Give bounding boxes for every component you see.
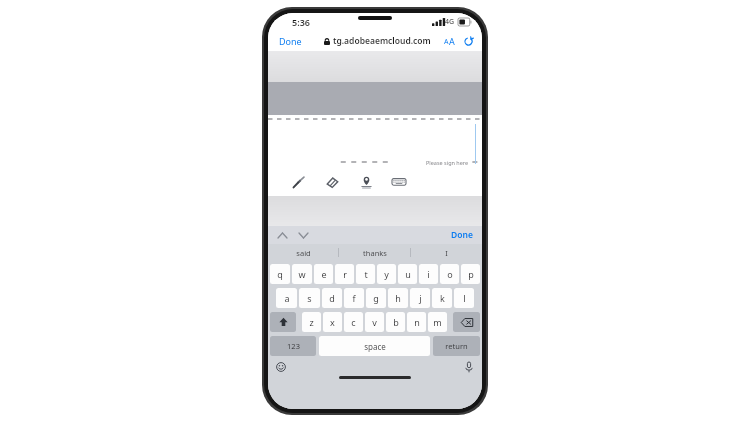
button[interactable]: Done — [276, 33, 305, 49]
staticText: space — [364, 341, 386, 352]
button[interactable]: o — [440, 264, 459, 284]
staticText: k — [440, 292, 445, 304]
button[interactable]: h — [388, 288, 408, 308]
staticText: thanks — [363, 248, 387, 258]
button[interactable]: m — [428, 312, 447, 332]
button[interactable]: Signature stamp — [358, 174, 374, 190]
staticText: p — [468, 268, 474, 280]
staticText: q — [277, 268, 283, 280]
button[interactable]: p — [461, 264, 480, 284]
staticText: u — [405, 268, 411, 280]
button[interactable]: z — [302, 312, 321, 332]
button[interactable]: space — [319, 336, 430, 356]
button[interactable]: n — [407, 312, 426, 332]
staticText: tg.adobeaemcloud.com — [333, 35, 431, 47]
staticText: Please sign here — [426, 159, 469, 166]
button[interactable]: c — [344, 312, 363, 332]
staticText: i — [427, 268, 430, 280]
button[interactable]: g — [366, 288, 386, 308]
staticText: r — [343, 268, 347, 280]
button[interactable]: l — [454, 288, 474, 308]
staticText: y — [384, 268, 389, 280]
button[interactable]: f — [344, 288, 364, 308]
button[interactable]: a — [276, 288, 297, 308]
button[interactable]: Text size — [442, 33, 457, 49]
staticText: x — [330, 316, 335, 328]
staticText: n — [414, 316, 420, 328]
staticText: return — [445, 341, 468, 351]
staticText: Done — [279, 35, 302, 47]
staticText: c — [351, 316, 356, 328]
button[interactable]: Pen — [290, 174, 306, 190]
staticText: A — [449, 35, 455, 47]
staticText: 5:36 — [292, 16, 310, 28]
button[interactable]: b — [386, 312, 405, 332]
staticText: g — [373, 292, 379, 304]
staticText: a — [284, 292, 290, 304]
button[interactable]: j — [410, 288, 430, 308]
button[interactable]: i — [419, 264, 438, 284]
staticText: j — [419, 292, 422, 304]
staticText: f — [352, 292, 356, 304]
staticText: e — [321, 268, 327, 280]
staticText: Done — [451, 229, 473, 241]
staticText: 123 — [287, 341, 300, 351]
button[interactable]: u — [398, 264, 417, 284]
button[interactable]: 123 — [270, 336, 316, 356]
staticText: w — [298, 268, 306, 280]
staticText: A — [444, 37, 449, 47]
button[interactable]: v — [365, 312, 384, 332]
staticText: h — [395, 292, 401, 304]
staticText: said — [296, 248, 311, 258]
staticText: v — [372, 316, 377, 328]
staticText: o — [447, 268, 453, 280]
staticText: l — [463, 292, 466, 304]
button[interactable]: Emoji — [274, 360, 288, 374]
button[interactable]: q — [270, 264, 290, 284]
button[interactable]: Done — [448, 227, 476, 243]
button[interactable]: thanks — [339, 244, 410, 261]
button[interactable]: s — [299, 288, 320, 308]
button[interactable]: t — [356, 264, 375, 284]
button[interactable]: r — [335, 264, 354, 284]
button[interactable]: e — [314, 264, 333, 284]
staticText: t — [364, 268, 368, 280]
button[interactable]: I — [411, 244, 482, 261]
button[interactable]: Reload — [462, 35, 475, 48]
staticText: z — [309, 316, 314, 328]
button[interactable]: y — [377, 264, 396, 284]
button[interactable]: k — [432, 288, 452, 308]
button[interactable]: said — [268, 244, 338, 261]
button[interactable]: Previous field — [275, 228, 289, 242]
staticText: b — [393, 316, 399, 328]
staticText: s — [307, 292, 312, 304]
staticText: 4G — [445, 17, 455, 27]
button[interactable]: x — [323, 312, 342, 332]
button[interactable]: Shift — [270, 312, 296, 332]
staticText: I — [445, 248, 448, 258]
staticText: m — [433, 316, 442, 328]
button[interactable]: Eraser — [324, 174, 340, 190]
button[interactable]: return — [433, 336, 480, 356]
staticText: d — [329, 292, 335, 304]
button[interactable]: w — [292, 264, 312, 284]
button[interactable]: d — [322, 288, 342, 308]
button[interactable]: Backspace — [453, 312, 480, 332]
button[interactable]: Dictation — [462, 360, 476, 374]
button[interactable]: Next field — [296, 228, 310, 242]
button[interactable]: Keyboard — [391, 174, 407, 190]
